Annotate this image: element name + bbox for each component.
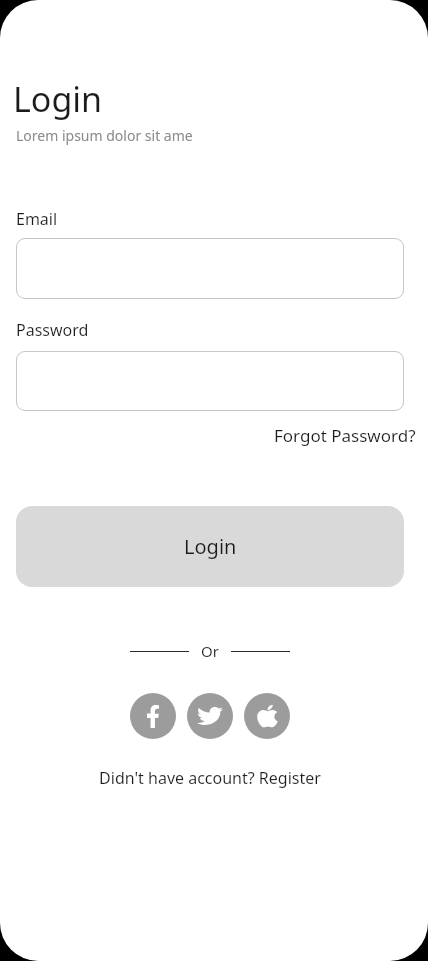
button[interactable] xyxy=(16,238,404,299)
staticText: Login xyxy=(13,76,103,122)
staticText: Lorem ipsum dolor sit ame xyxy=(16,126,193,145)
staticText: Password xyxy=(16,319,89,341)
button[interactable] xyxy=(130,693,176,739)
button[interactable]: Forgot Password? xyxy=(274,424,416,447)
button[interactable]: Login xyxy=(16,506,404,587)
staticText: Email xyxy=(16,208,58,230)
button[interactable] xyxy=(187,693,233,739)
button[interactable]: Didn't have account? Register xyxy=(99,767,321,789)
button[interactable] xyxy=(16,351,404,411)
staticText: Login xyxy=(184,533,237,560)
button[interactable] xyxy=(244,693,290,739)
staticText: Or xyxy=(201,641,219,661)
